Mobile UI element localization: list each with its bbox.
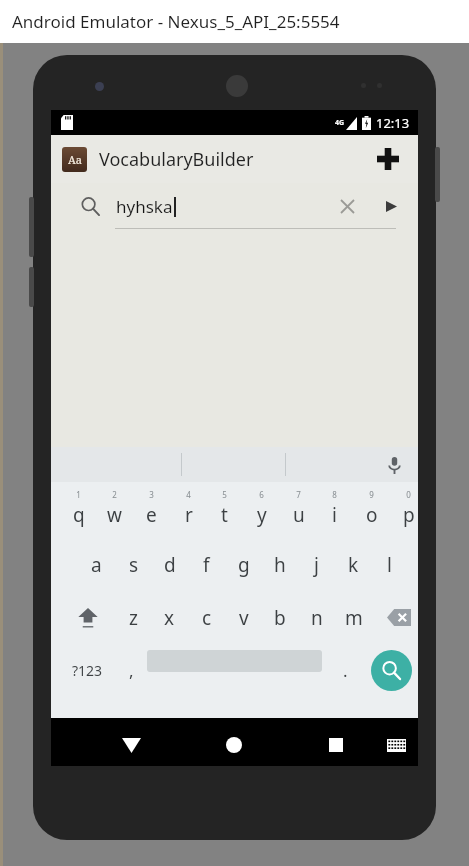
button[interactable]: 5 [206, 485, 243, 538]
staticText: 6 [259, 489, 264, 500]
staticText: o [366, 502, 378, 528]
staticText: l [387, 552, 392, 578]
button[interactable]: c [188, 591, 225, 644]
staticText: 12:13 [376, 114, 410, 132]
button[interactable]: l [371, 538, 408, 591]
button[interactable]: v [225, 591, 262, 644]
staticText: d [164, 552, 176, 578]
button[interactable]: 0 [390, 485, 427, 538]
staticText: w [107, 502, 122, 528]
staticText: c [202, 605, 212, 631]
button[interactable]: Add word [370, 141, 406, 177]
staticText: Aa [68, 152, 82, 167]
staticText: 0 [406, 489, 411, 500]
staticText: 7 [296, 489, 301, 500]
button[interactable]: Back [113, 727, 149, 763]
staticText: h [274, 552, 286, 578]
button[interactable]: Voice input [379, 450, 409, 480]
button[interactable]: a [78, 538, 115, 591]
staticText: 8 [332, 489, 337, 500]
button[interactable]: . [329, 644, 361, 697]
staticText: 4 [186, 489, 191, 500]
button[interactable]: n [298, 591, 335, 644]
staticText: b [274, 605, 286, 631]
button[interactable]: 3 [133, 485, 170, 538]
button[interactable]: h [261, 538, 298, 591]
button[interactable]: x [151, 591, 188, 644]
button[interactable]: g [225, 538, 262, 591]
staticText: k [348, 552, 359, 578]
staticText: j [314, 552, 319, 578]
button[interactable]: d [151, 538, 188, 591]
button[interactable]: Backspace [371, 591, 426, 644]
staticText: Android Emulator - Nexus_5_API_25:5554 [12, 10, 340, 33]
button[interactable]: 7 [280, 485, 317, 538]
button[interactable]: 8 [316, 485, 353, 538]
staticText: i [332, 502, 337, 528]
staticText: hyhska [116, 195, 173, 218]
staticText: x [164, 605, 175, 631]
staticText: 1 [76, 489, 81, 500]
button[interactable]: b [261, 591, 298, 644]
button[interactable]: Search [371, 650, 412, 691]
button[interactable]: Clear [332, 191, 362, 221]
button[interactable]: 1 [60, 485, 97, 538]
button[interactable]: z [115, 591, 152, 644]
staticText: 3 [149, 489, 154, 500]
staticText: q [73, 502, 85, 528]
staticText: m [345, 605, 363, 631]
staticText: ?123 [72, 661, 103, 680]
staticText: n [311, 605, 323, 631]
staticText: a [91, 552, 102, 578]
staticText: p [403, 502, 415, 528]
staticText: f [203, 552, 210, 578]
button[interactable]: j [298, 538, 335, 591]
button[interactable]: k [335, 538, 372, 591]
button[interactable]: 4 [170, 485, 207, 538]
staticText: y [257, 502, 267, 528]
staticText: t [221, 502, 228, 528]
button[interactable]: Switch keyboard [380, 729, 412, 761]
staticText: 2 [112, 489, 117, 500]
staticText: , [129, 659, 134, 682]
button[interactable]: 9 [353, 485, 390, 538]
staticText: VocabularyBuilder [99, 147, 254, 172]
button[interactable]: s [115, 538, 152, 591]
staticText: s [129, 552, 139, 578]
button[interactable]: 2 [96, 485, 133, 538]
button[interactable]: Search [376, 191, 406, 221]
button[interactable]: ?123 [60, 644, 115, 697]
staticText: u [293, 502, 305, 528]
staticText: 4G [335, 118, 345, 128]
button[interactable]: , [115, 644, 147, 697]
button[interactable]: 6 [243, 485, 280, 538]
staticText: v [239, 605, 249, 631]
button[interactable]: Shift [60, 591, 115, 644]
staticText: . [343, 659, 348, 682]
staticText: r [185, 502, 193, 528]
button[interactable]: Recents [318, 727, 354, 763]
staticText: e [146, 502, 157, 528]
button[interactable]: Home [216, 727, 252, 763]
button[interactable]: f [188, 538, 225, 591]
staticText: 9 [369, 489, 374, 500]
staticText: 5 [222, 489, 227, 500]
staticText: g [238, 552, 250, 578]
button[interactable]: m [335, 591, 372, 644]
staticText: z [129, 605, 138, 631]
